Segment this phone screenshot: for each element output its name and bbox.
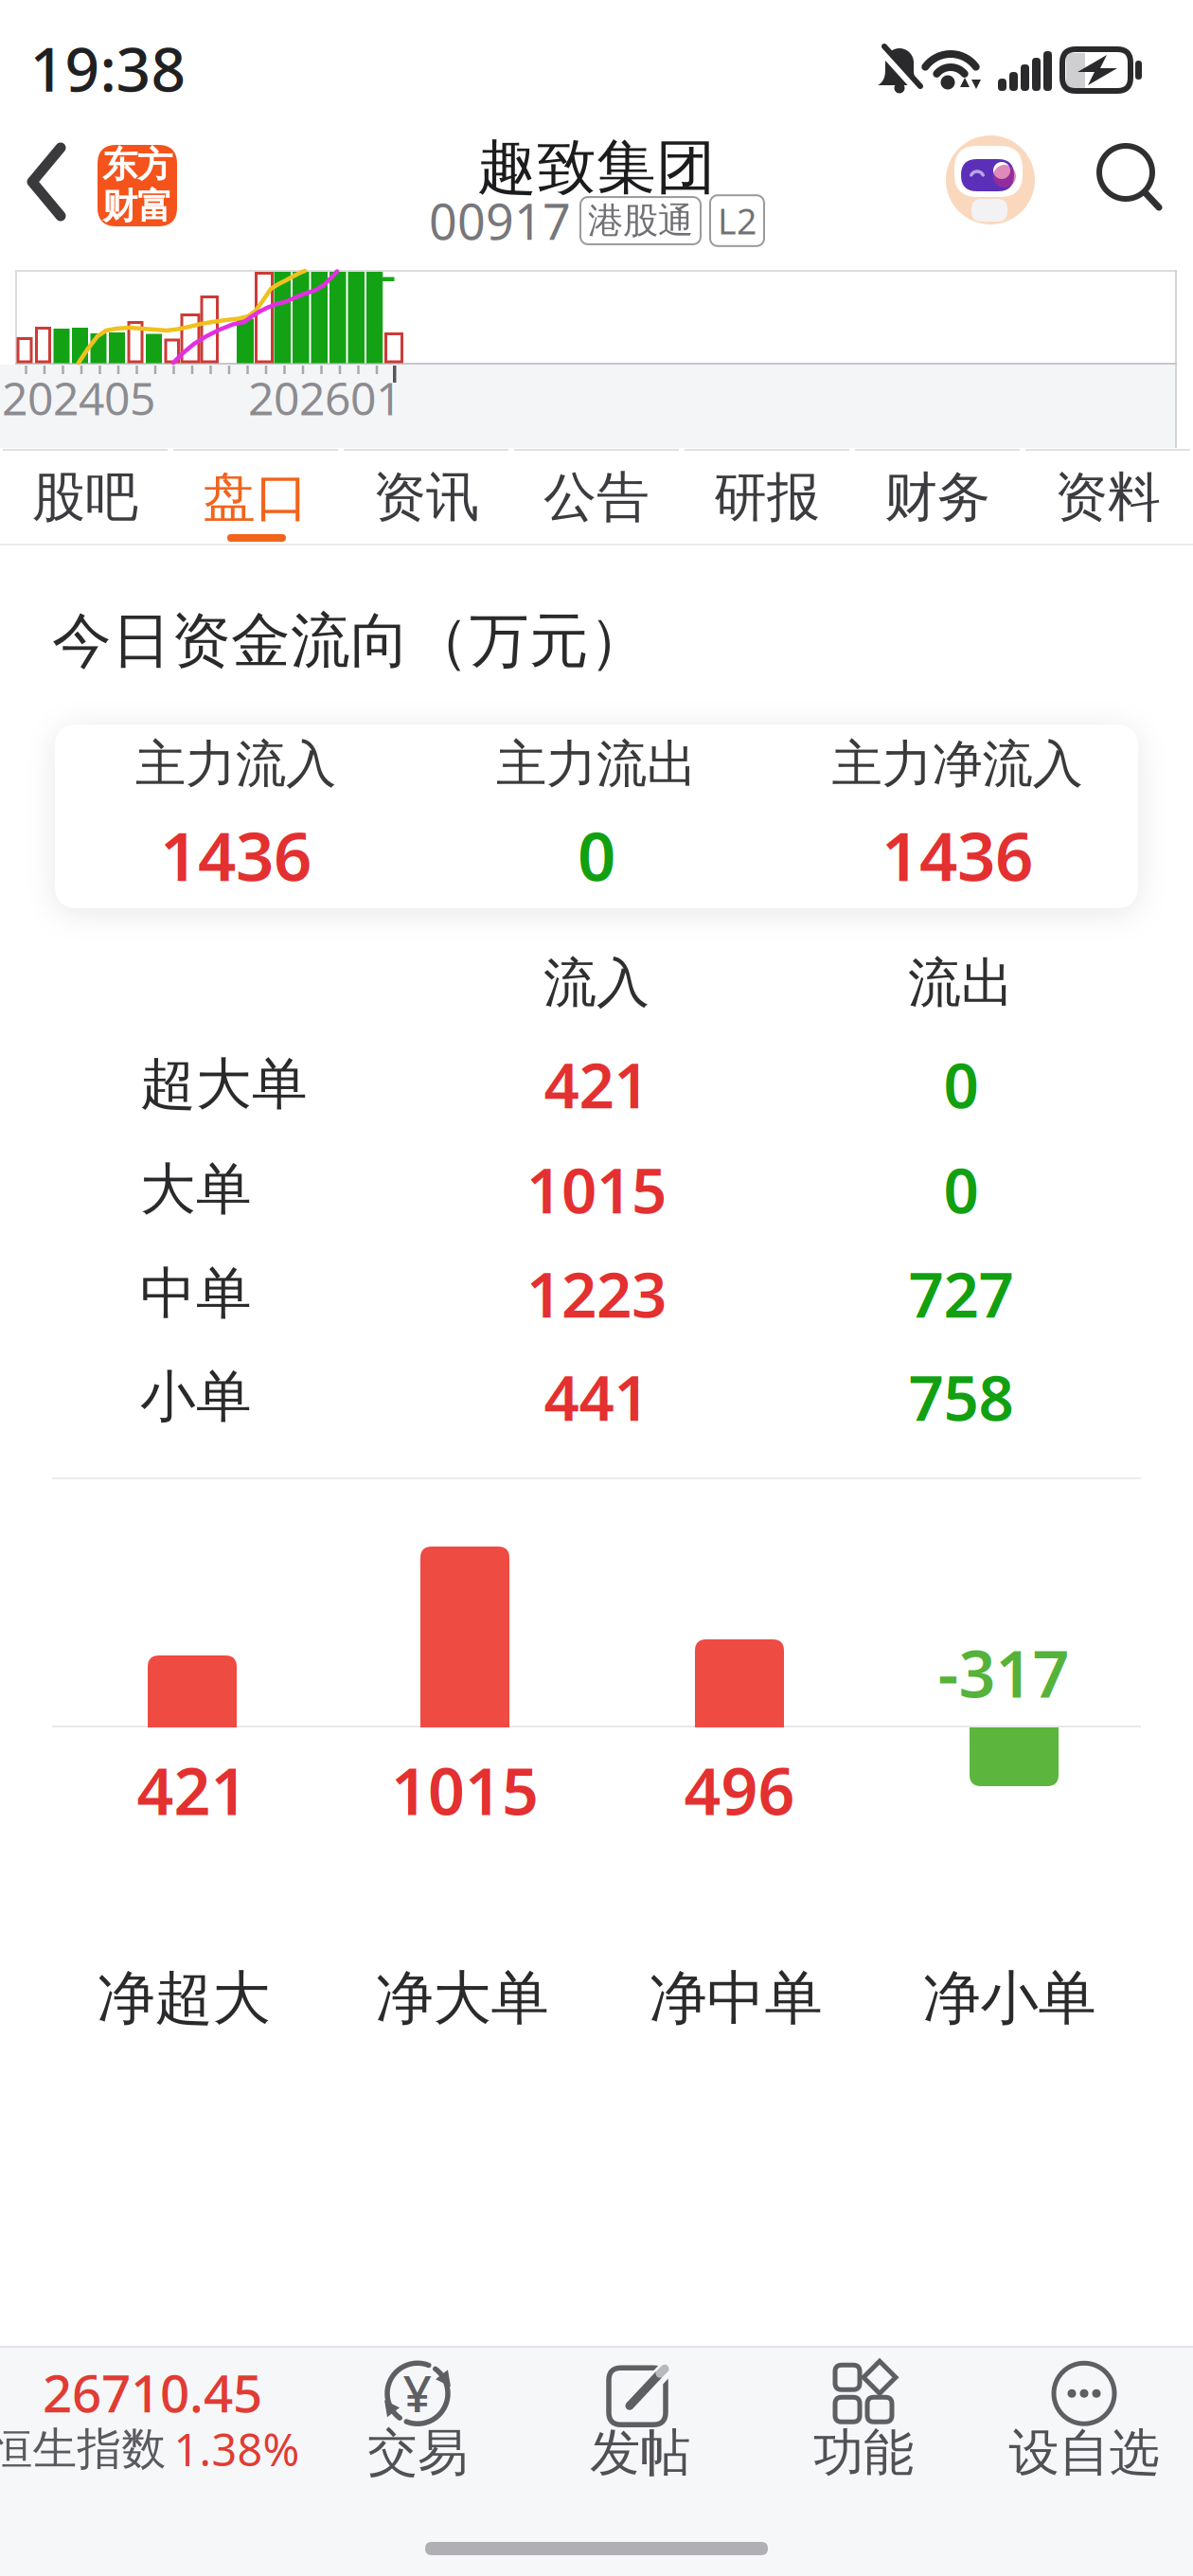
- button[interactable]: 资讯: [341, 451, 511, 544]
- button[interactable]: 26710.45: [0, 2350, 312, 2492]
- staticText: 中单: [140, 1260, 252, 1328]
- staticText: 净大单: [375, 1963, 549, 2034]
- staticText: 496: [684, 1747, 795, 1833]
- staticText: 净超大: [97, 1963, 270, 2034]
- staticText: 趣致集团: [477, 131, 716, 204]
- staticText: 超大单: [140, 1050, 308, 1119]
- button[interactable]: 设自选: [999, 2340, 1169, 2501]
- staticText: 1015: [526, 1148, 667, 1231]
- staticText: 主力流入: [135, 733, 336, 795]
- staticText: 19:38: [30, 28, 186, 108]
- button[interactable]: 股吧: [0, 451, 170, 544]
- button[interactable]: 研报: [682, 451, 852, 544]
- staticText: -317: [938, 1630, 1069, 1715]
- staticText: 1.38%: [174, 2420, 300, 2478]
- staticText: ¥: [403, 2359, 432, 2426]
- staticText: 净小单: [923, 1963, 1096, 2034]
- staticText: 1436: [160, 810, 312, 899]
- staticText: 港股通: [588, 199, 693, 242]
- staticText: 财务: [884, 465, 990, 530]
- button[interactable]: Search: [1096, 144, 1165, 212]
- staticText: 0: [944, 1148, 979, 1231]
- button[interactable]: 公告: [511, 451, 682, 544]
- staticText: 财富: [102, 185, 172, 228]
- staticText: 大单: [140, 1155, 252, 1224]
- staticText: 1223: [526, 1253, 667, 1335]
- button[interactable]: 发帖: [560, 2340, 721, 2501]
- staticText: 1015: [391, 1747, 539, 1833]
- staticText: 功能: [813, 2422, 914, 2484]
- staticText: 202405: [2, 368, 155, 428]
- staticText: 202601: [248, 368, 401, 428]
- staticText: 净中单: [649, 1963, 822, 2034]
- staticText: 盘口: [203, 465, 309, 530]
- button[interactable]: Back: [13, 125, 98, 239]
- staticText: 758: [908, 1356, 1014, 1438]
- staticText: 26710.45: [43, 2358, 262, 2427]
- button[interactable]: ¥: [337, 2340, 498, 2501]
- button[interactable]: 财务: [852, 451, 1023, 544]
- staticText: 今日资金流向（万元）: [52, 605, 649, 678]
- staticText: 资讯: [373, 465, 479, 530]
- staticText: 恒生指数: [0, 2422, 166, 2476]
- staticText: 主力流出: [496, 733, 697, 795]
- staticText: 流入: [543, 950, 650, 1016]
- staticText: 00917: [429, 188, 571, 253]
- staticText: 研报: [714, 465, 820, 530]
- staticText: 1436: [881, 810, 1033, 899]
- staticText: 股吧: [32, 465, 138, 530]
- staticText: 流出: [908, 950, 1014, 1016]
- staticText: 东方: [102, 143, 172, 187]
- staticText: L2: [718, 197, 757, 244]
- staticText: 421: [137, 1747, 248, 1833]
- button[interactable]: 盘口: [170, 451, 341, 544]
- staticText: 727: [908, 1253, 1014, 1335]
- staticText: 0: [944, 1043, 979, 1125]
- staticText: 资料: [1055, 465, 1161, 530]
- staticText: 发帖: [590, 2422, 690, 2484]
- staticText: 交易: [367, 2422, 468, 2484]
- staticText: 421: [544, 1043, 649, 1125]
- staticText: 公告: [543, 465, 650, 530]
- staticText: 小单: [140, 1363, 252, 1431]
- button[interactable]: Assistant: [945, 134, 1036, 225]
- button[interactable]: 功能: [783, 2340, 944, 2501]
- staticText: 0: [578, 810, 615, 899]
- staticText: 设自选: [1009, 2422, 1159, 2484]
- staticText: 441: [544, 1356, 649, 1438]
- button[interactable]: 资料: [1023, 451, 1193, 544]
- staticText: 主力净流入: [832, 733, 1083, 795]
